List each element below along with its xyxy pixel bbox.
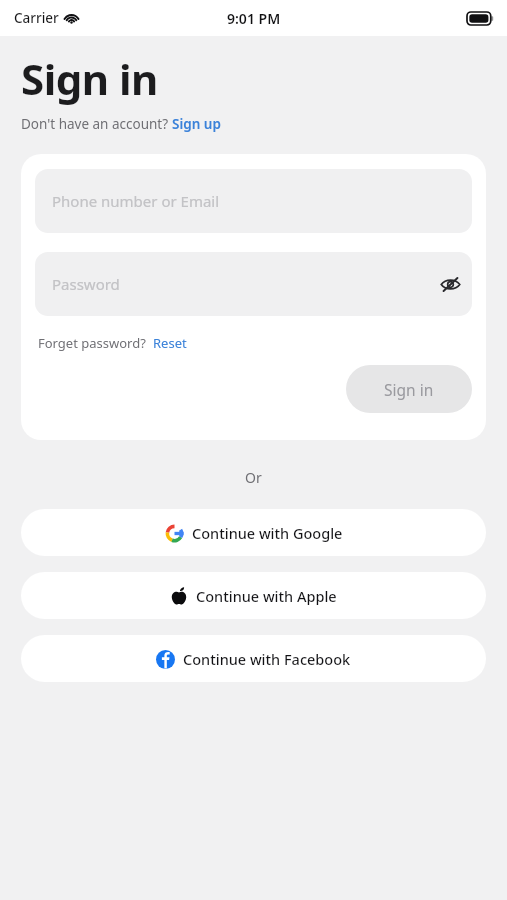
button[interactable]: Show password	[428, 262, 472, 306]
button[interactable]: Continue with Apple	[21, 572, 486, 619]
button[interactable]: Continue with Google	[21, 509, 486, 556]
staticText: Reset	[153, 334, 187, 352]
staticText: Or	[245, 468, 262, 487]
button[interactable]: Phone number or Email	[35, 169, 472, 233]
button[interactable]: Reset	[153, 334, 187, 352]
staticText: Phone number or Email	[52, 191, 220, 211]
staticText: Continue with Google	[192, 523, 343, 543]
staticText: Sign in	[21, 50, 158, 107]
staticText: Sign up	[172, 115, 221, 133]
staticText: Sign in	[384, 379, 434, 400]
button[interactable]: Sign up	[172, 115, 221, 133]
staticText: Continue with Apple	[196, 586, 337, 606]
button[interactable]: Sign in	[346, 365, 472, 413]
button[interactable]: Password	[35, 252, 472, 316]
staticText: Password	[52, 274, 120, 294]
staticText: 9:01 PM	[227, 9, 281, 28]
staticText: Continue with Facebook	[183, 649, 351, 669]
staticText: Don't have an account?	[21, 115, 172, 133]
button[interactable]: Continue with Facebook	[21, 635, 486, 682]
staticText: Forget password?	[38, 334, 153, 352]
staticText: Carrier	[14, 9, 59, 27]
